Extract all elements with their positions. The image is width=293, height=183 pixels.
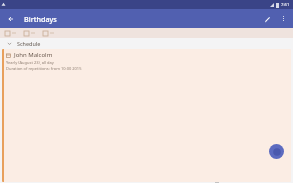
button[interactable]: Schedule [0, 39, 293, 48]
button[interactable]: Edit [258, 10, 276, 28]
staticText: Birthdays [24, 14, 57, 24]
button[interactable]: John Malcolm [2, 49, 291, 182]
button[interactable]: More options [276, 11, 291, 26]
button[interactable]: Back [0, 9, 19, 28]
staticText: Duration of repetitions: from 10:00 2015 [6, 66, 82, 71]
staticText: 7:51 [281, 2, 290, 8]
button[interactable]: Filter 3 [41, 28, 56, 38]
button[interactable]: Filter 2 [22, 28, 37, 38]
staticText: John Malcolm [14, 51, 53, 59]
staticText: Schedule [17, 40, 41, 47]
button[interactable]: Filter 1 [3, 28, 18, 38]
button[interactable]: Add birthday [269, 144, 284, 159]
staticText: Yearly (August 23), all day [6, 60, 54, 65]
